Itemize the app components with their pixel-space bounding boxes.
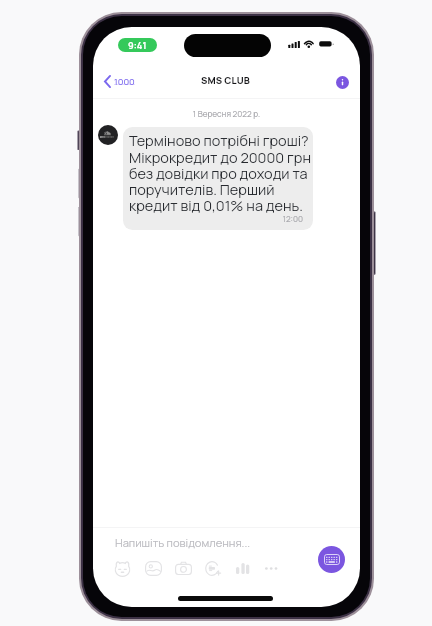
button[interactable]: 1000: [100, 70, 138, 93]
button[interactable]: Stickers: [111, 557, 133, 579]
staticText: 1000: [114, 75, 135, 87]
staticText: Напишіть повідомлення...: [115, 535, 251, 550]
button[interactable]: Info: [336, 76, 349, 89]
staticText: 9:41: [128, 39, 147, 52]
button[interactable]: Терміново потрібні гроші? Мікрокредит до…: [123, 127, 313, 230]
button[interactable]: GIF: [202, 557, 224, 579]
button[interactable]: Camera: [172, 557, 194, 579]
button[interactable]: Photo: [142, 557, 164, 579]
button[interactable]: Keyboard: [318, 546, 345, 573]
button[interactable]: More: [260, 557, 282, 579]
staticText: SMS CLUB: [201, 74, 250, 87]
staticText: 1 Вересня 2022 р.: [93, 108, 360, 119]
staticText: Терміново потрібні гроші? Мікрокредит до…: [129, 131, 313, 215]
button[interactable]: Voice: [231, 557, 253, 579]
staticText: 12:00: [271, 213, 303, 224]
